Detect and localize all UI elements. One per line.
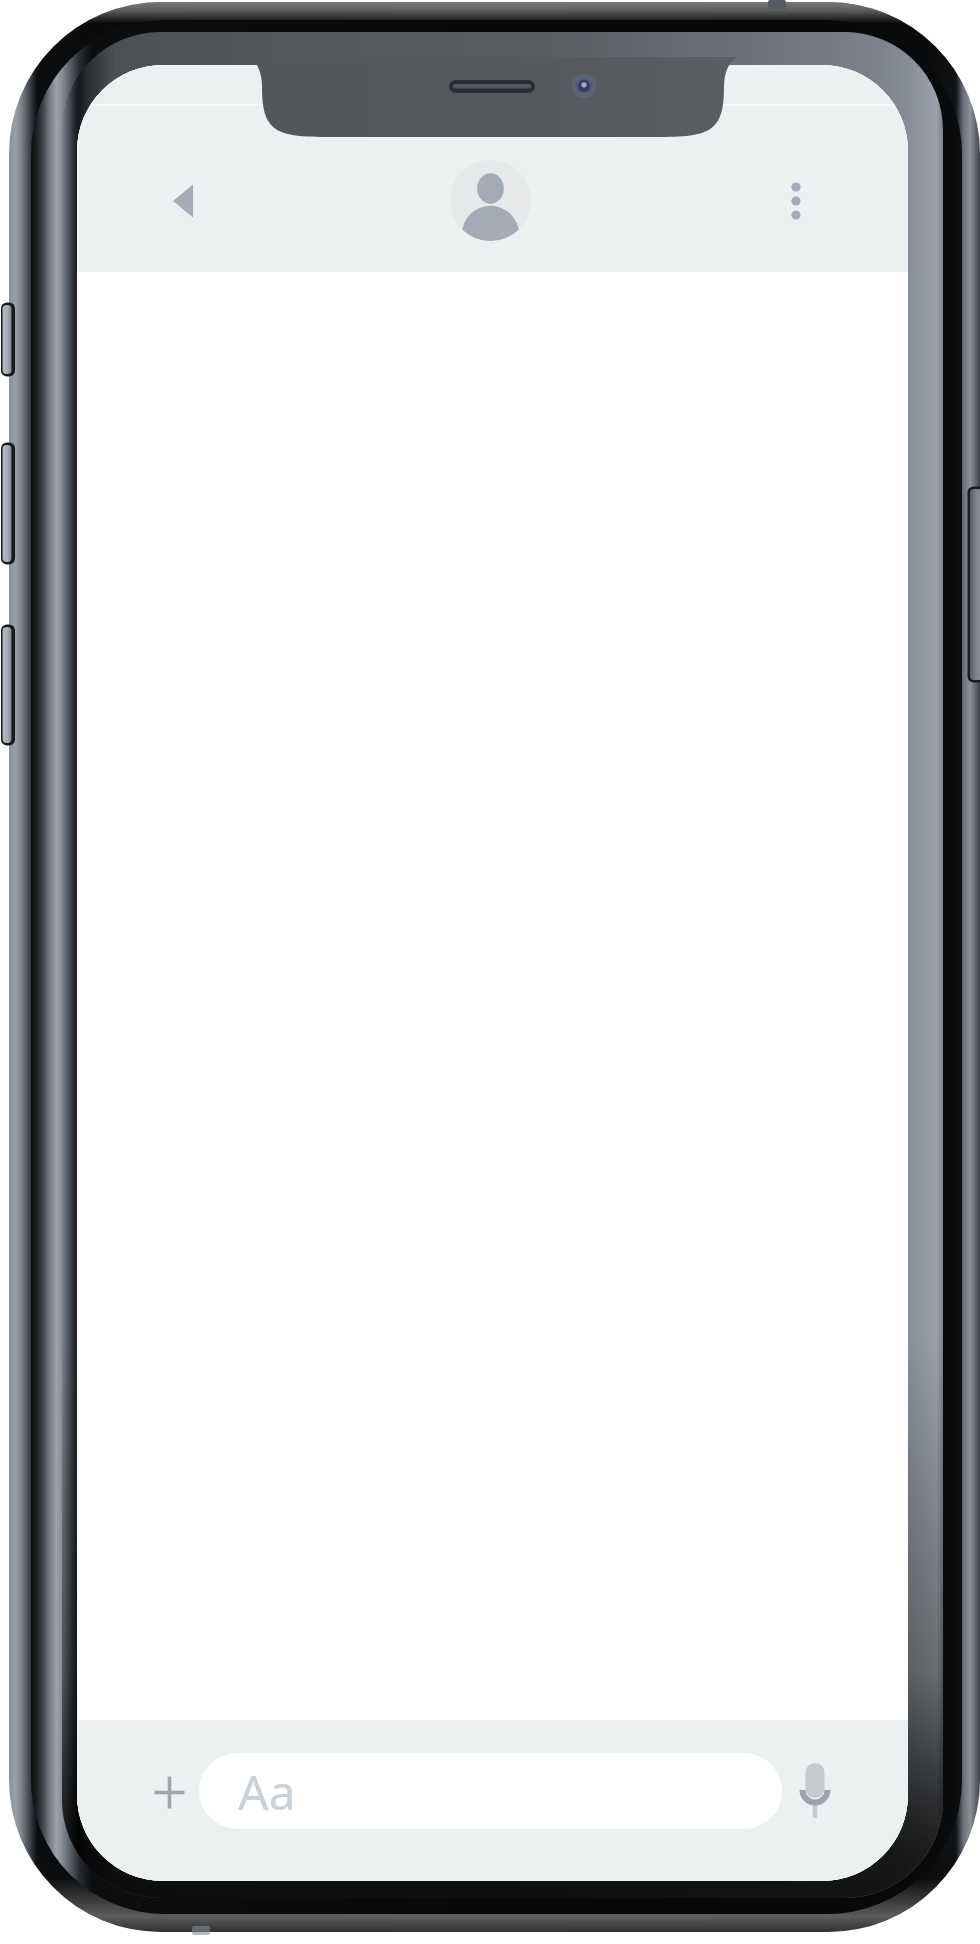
- button[interactable]: Profile photo: [450, 160, 531, 241]
- button[interactable]: Aa: [199, 1753, 782, 1829]
- button[interactable]: More options: [748, 153, 844, 249]
- button[interactable]: Back: [135, 153, 231, 249]
- staticText: Aa: [238, 1759, 296, 1824]
- button[interactable]: Add attachment: [122, 1745, 217, 1840]
- button[interactable]: Voice message: [767, 1742, 863, 1838]
